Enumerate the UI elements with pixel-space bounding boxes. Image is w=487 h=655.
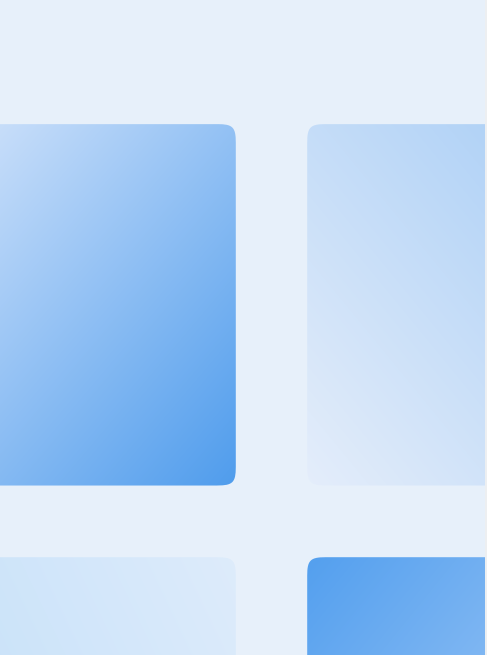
- button[interactable]: Photo 1: [0, 124, 236, 485]
- button[interactable]: Photo 4: [307, 557, 487, 655]
- button[interactable]: Photo 3: [0, 557, 236, 655]
- button[interactable]: Photo 2: [307, 124, 487, 485]
